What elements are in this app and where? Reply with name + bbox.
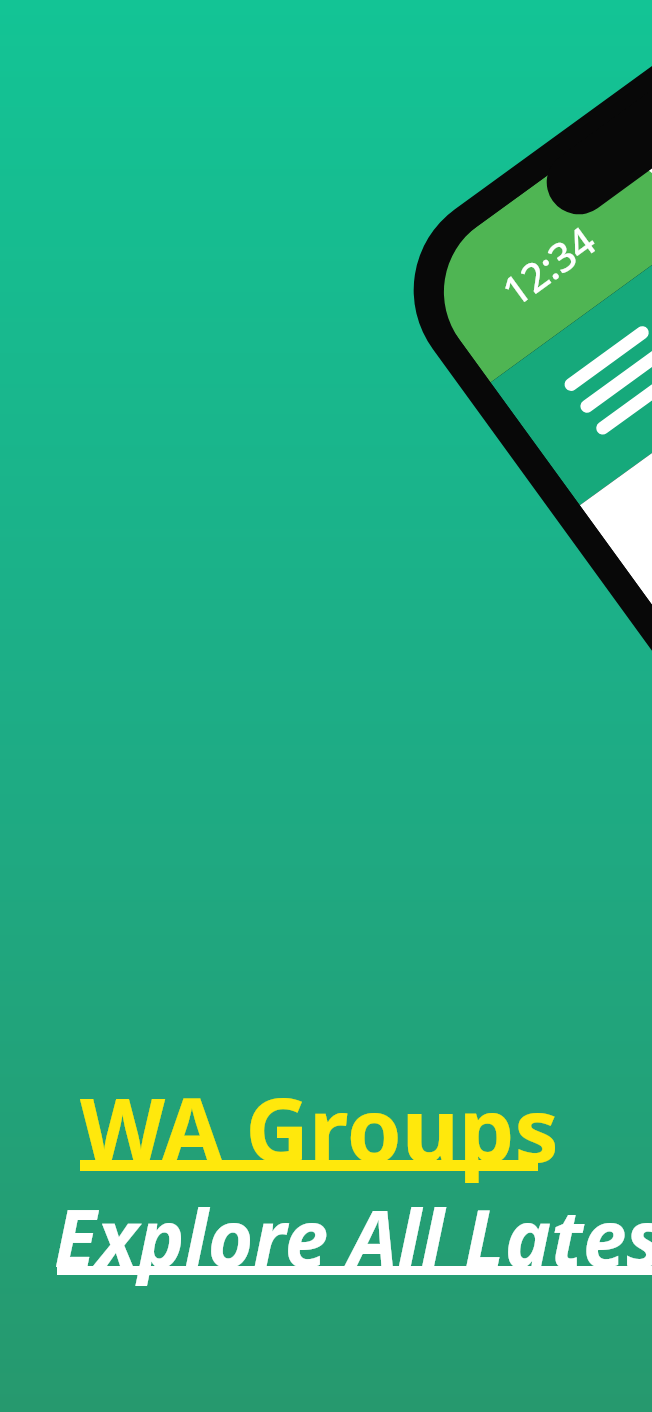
button[interactable]: WA Groups app preview <box>0 0 652 1412</box>
